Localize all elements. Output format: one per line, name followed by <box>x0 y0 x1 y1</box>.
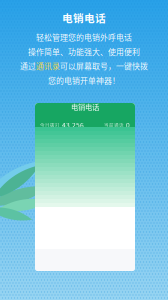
staticText: 通讯录 <box>36 60 60 72</box>
staticText: 电销电话 <box>62 10 106 25</box>
staticText: 操作简单、功能强大、使用便利 <box>28 46 140 57</box>
staticText: 电销电话 <box>71 101 99 112</box>
staticText: 轻松管理您的电销外呼电话 <box>36 31 132 43</box>
staticText: 0 <box>126 120 130 130</box>
staticText: 43,256 <box>62 120 84 130</box>
staticText: 当前通话 <box>104 121 124 128</box>
staticText: 您的电销开单神器！ <box>48 75 120 86</box>
staticText: 通过 <box>20 60 36 72</box>
staticText: 今日拨打 <box>40 121 60 128</box>
staticText: 可以屏幕取号，一键快拨 <box>60 60 148 72</box>
